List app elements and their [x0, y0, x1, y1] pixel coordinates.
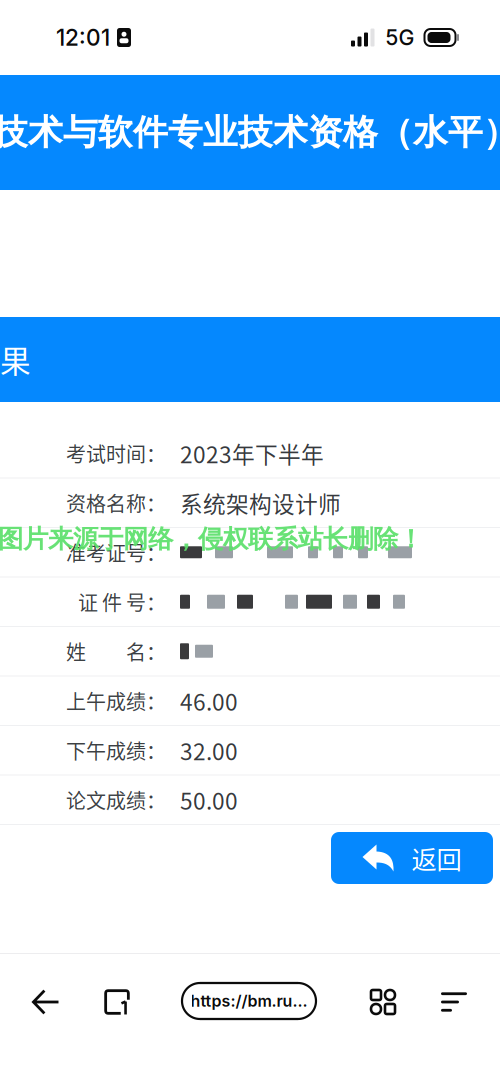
staticText: 5G: [385, 25, 414, 50]
staticText: 查询结果: [0, 337, 31, 382]
button[interactable]: Menu: [428, 976, 480, 1028]
staticText: 系统架构设计师: [180, 486, 341, 519]
staticText: 图片来源于网络，侵权联系站长删除！: [0, 523, 423, 555]
staticText: 技术与软件专业技术资格（水平）考试: [0, 111, 500, 154]
staticText: 上午成绩：: [66, 686, 166, 715]
staticText: 论文成绩：: [66, 785, 166, 814]
staticText: 下午成绩：: [66, 736, 166, 765]
staticText: 证 件 号：: [78, 587, 166, 616]
staticText: 资格名称：: [66, 488, 166, 517]
staticText: 2023年下半年: [180, 437, 324, 470]
staticText: 12:01: [56, 24, 110, 51]
staticText: 准考证号：: [66, 538, 166, 567]
staticText: 考试时间：: [66, 439, 166, 468]
button[interactable]: 返回: [331, 832, 493, 884]
staticText: 46.00: [180, 684, 238, 717]
button[interactable]: Back: [19, 976, 71, 1028]
staticText: 32.00: [180, 734, 238, 767]
button[interactable]: Apps: [357, 976, 409, 1028]
staticText: 姓 名：: [66, 637, 166, 666]
staticText: 50.00: [180, 783, 238, 816]
button[interactable]: Tabs: [91, 976, 143, 1028]
staticText: 返回: [411, 840, 461, 876]
button[interactable]: Address bar: [182, 983, 316, 1019]
staticText: https://bm.ru...: [190, 991, 307, 1011]
